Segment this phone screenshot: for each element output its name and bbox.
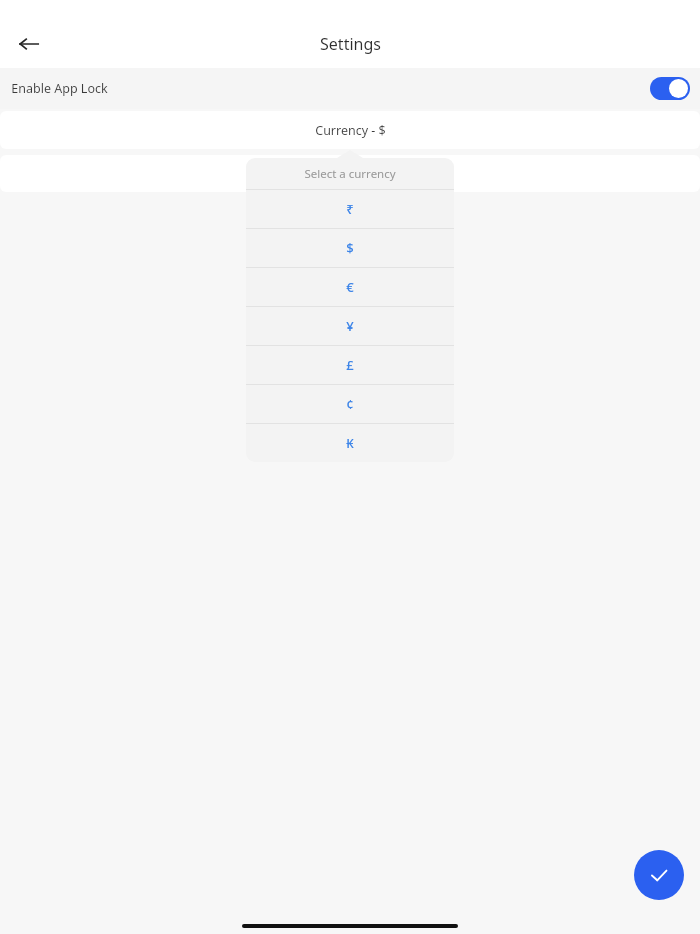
staticText: $ — [346, 239, 354, 257]
staticText: Currency - $ — [315, 122, 386, 139]
button[interactable]: € — [246, 268, 454, 306]
button[interactable]: ¢ — [246, 385, 454, 423]
button[interactable]: Back — [12, 27, 46, 61]
staticText: ₭ — [346, 434, 354, 452]
staticText: € — [346, 278, 354, 296]
staticText: ₹ — [346, 200, 354, 218]
button[interactable]: Enable App Lock — [0, 68, 700, 109]
button[interactable] — [0, 155, 700, 192]
button[interactable]: Confirm — [634, 850, 684, 900]
staticText: ¥ — [346, 317, 354, 335]
button[interactable]: $ — [246, 229, 454, 267]
staticText: Select a currency — [304, 166, 396, 182]
staticText: £ — [346, 356, 354, 374]
button[interactable]: Currency - $ — [0, 111, 700, 149]
button[interactable]: £ — [246, 346, 454, 384]
staticText: ¢ — [346, 395, 354, 413]
button[interactable]: ₭ — [246, 424, 454, 462]
button[interactable]: ₹ — [246, 190, 454, 228]
staticText: Settings — [320, 33, 381, 55]
staticText: Enable App Lock — [11, 80, 108, 97]
button[interactable]: ¥ — [246, 307, 454, 345]
button[interactable]: Enable App Lock toggle — [650, 77, 690, 100]
